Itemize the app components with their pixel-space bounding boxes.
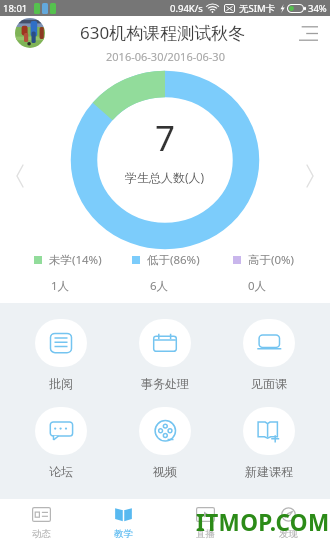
staticText: 视频 [153, 464, 177, 479]
staticText: 事务处理 [141, 376, 189, 391]
button[interactable]: 新建课程 [217, 407, 321, 479]
staticText: 7 [155, 114, 176, 162]
staticText: 未学(14%) [49, 252, 102, 268]
button[interactable]: 事务处理 [113, 319, 217, 391]
button[interactable]: 动态 [0, 499, 82, 550]
staticText: 2016-06-30/2016-06-30 [106, 49, 225, 64]
button[interactable]: 视频 [113, 407, 217, 479]
staticText: 0人 [248, 278, 267, 294]
staticText: 批阅 [49, 376, 73, 391]
staticText: ITMOP.COM [196, 507, 330, 538]
staticText: 630机构课程测试秋冬 [80, 21, 246, 44]
staticText: 教学 [114, 528, 133, 540]
button[interactable]: 直播 [164, 499, 247, 550]
button[interactable]: 教学 [82, 499, 164, 550]
staticText: 直播 [196, 528, 215, 540]
staticText: 新建课程 [245, 464, 293, 479]
staticText: 无SIM卡 [239, 2, 276, 15]
button[interactable]: Profile [15, 18, 45, 48]
staticText: 动态 [32, 528, 51, 540]
button[interactable]: 见面课 [217, 319, 321, 391]
button[interactable]: 论坛 [8, 407, 113, 479]
staticText: 0.94K/s [170, 2, 203, 15]
staticText: 低于(86%) [147, 252, 200, 268]
staticText: 见面课 [251, 376, 287, 391]
staticText: 发现 [279, 528, 298, 540]
staticText: 学生总人数(人) [125, 169, 205, 185]
button[interactable]: 批阅 [8, 319, 113, 391]
staticText: 6人 [150, 278, 169, 294]
button[interactable]: Menu [295, 20, 321, 46]
staticText: 论坛 [49, 464, 73, 479]
staticText: 高于(0%) [248, 252, 295, 268]
staticText: 18:01 [3, 2, 28, 15]
button[interactable]: 发现 [247, 499, 330, 550]
staticText: 1人 [51, 278, 70, 294]
staticText: 34% [308, 2, 327, 15]
